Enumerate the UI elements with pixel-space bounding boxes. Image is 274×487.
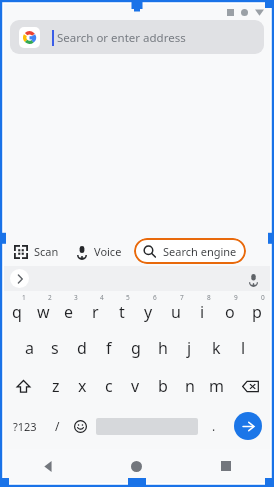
button[interactable]: 5: [108, 291, 135, 329]
button[interactable]: Go: [234, 412, 262, 440]
staticText: 8: [207, 293, 211, 302]
staticText: z: [52, 375, 60, 397]
button[interactable]: 9: [216, 291, 243, 329]
staticText: k: [212, 337, 221, 359]
button[interactable]: 8: [189, 291, 216, 329]
button[interactable]: z: [43, 367, 69, 405]
staticText: b: [158, 375, 168, 397]
staticText: c: [105, 375, 113, 397]
staticText: 3: [74, 293, 78, 302]
staticText: y: [144, 301, 153, 323]
button[interactable]: Voice: [75, 244, 122, 259]
staticText: p: [252, 301, 262, 323]
button[interactable]: 2: [30, 291, 56, 329]
staticText: n: [185, 375, 195, 397]
staticText: 9: [234, 293, 238, 302]
button[interactable]: Recents: [181, 449, 270, 483]
button[interactable]: Voice input: [244, 270, 262, 288]
button[interactable]: v: [122, 367, 149, 405]
button[interactable]: x: [69, 367, 95, 405]
staticText: 4: [100, 293, 104, 302]
button[interactable]: s: [42, 329, 68, 367]
staticText: g: [131, 337, 141, 359]
button[interactable]: 7: [162, 291, 189, 329]
staticText: f: [106, 337, 112, 359]
staticText: x: [78, 375, 87, 397]
staticText: r: [92, 301, 99, 323]
staticText: Scan: [34, 244, 59, 259]
button[interactable]: 1: [4, 291, 30, 329]
button[interactable]: Back: [4, 449, 92, 483]
button[interactable]: j: [176, 329, 203, 367]
button[interactable]: g: [122, 329, 149, 367]
staticText: w: [37, 301, 50, 323]
staticText: 1: [22, 293, 26, 302]
button[interactable]: 4: [82, 291, 108, 329]
staticText: s: [51, 337, 59, 359]
staticText: 6: [153, 293, 157, 302]
staticText: t: [119, 301, 125, 323]
button[interactable]: Search or enter address: [10, 20, 264, 54]
button[interactable]: 0: [243, 291, 270, 329]
button[interactable]: m: [203, 367, 230, 405]
button[interactable]: h: [149, 329, 176, 367]
staticText: m: [209, 375, 224, 397]
button[interactable]: Home: [92, 449, 181, 483]
button[interactable]: /: [46, 405, 68, 447]
staticText: a: [25, 337, 34, 359]
staticText: u: [171, 301, 181, 323]
button[interactable]: f: [95, 329, 122, 367]
button[interactable]: Shift: [4, 367, 43, 405]
staticText: Search engine: [163, 244, 237, 259]
button[interactable]: Scan: [14, 244, 59, 259]
staticText: q: [12, 301, 22, 323]
button[interactable]: Backspace: [230, 367, 270, 405]
button[interactable]: b: [149, 367, 176, 405]
button[interactable]: .: [201, 405, 226, 447]
button[interactable]: Expand toolbar: [10, 269, 29, 288]
staticText: e: [64, 301, 74, 323]
button[interactable]: d: [68, 329, 95, 367]
button[interactable]: 6: [135, 291, 162, 329]
staticText: d: [77, 337, 87, 359]
staticText: v: [131, 375, 140, 397]
button[interactable]: l: [230, 329, 257, 367]
button[interactable]: ?123: [4, 405, 46, 447]
staticText: Voice: [94, 244, 122, 259]
button[interactable]: k: [203, 329, 230, 367]
staticText: 7: [180, 293, 184, 302]
button[interactable]: c: [95, 367, 122, 405]
staticText: j: [187, 337, 192, 359]
staticText: i: [200, 301, 205, 323]
button[interactable]: Emoji: [68, 405, 93, 447]
staticText: 0: [261, 293, 265, 302]
staticText: /: [55, 418, 60, 434]
staticText: 2: [48, 293, 52, 302]
button[interactable]: Search engine: [134, 238, 246, 264]
staticText: ?123: [13, 419, 37, 434]
staticText: .: [212, 418, 216, 434]
button[interactable]: n: [176, 367, 203, 405]
staticText: 5: [126, 293, 130, 302]
button[interactable]: a: [16, 329, 42, 367]
staticText: o: [225, 301, 235, 323]
staticText: h: [158, 337, 168, 359]
staticText: Search or enter address: [57, 30, 186, 46]
button[interactable]: 3: [56, 291, 82, 329]
staticText: l: [241, 337, 246, 359]
